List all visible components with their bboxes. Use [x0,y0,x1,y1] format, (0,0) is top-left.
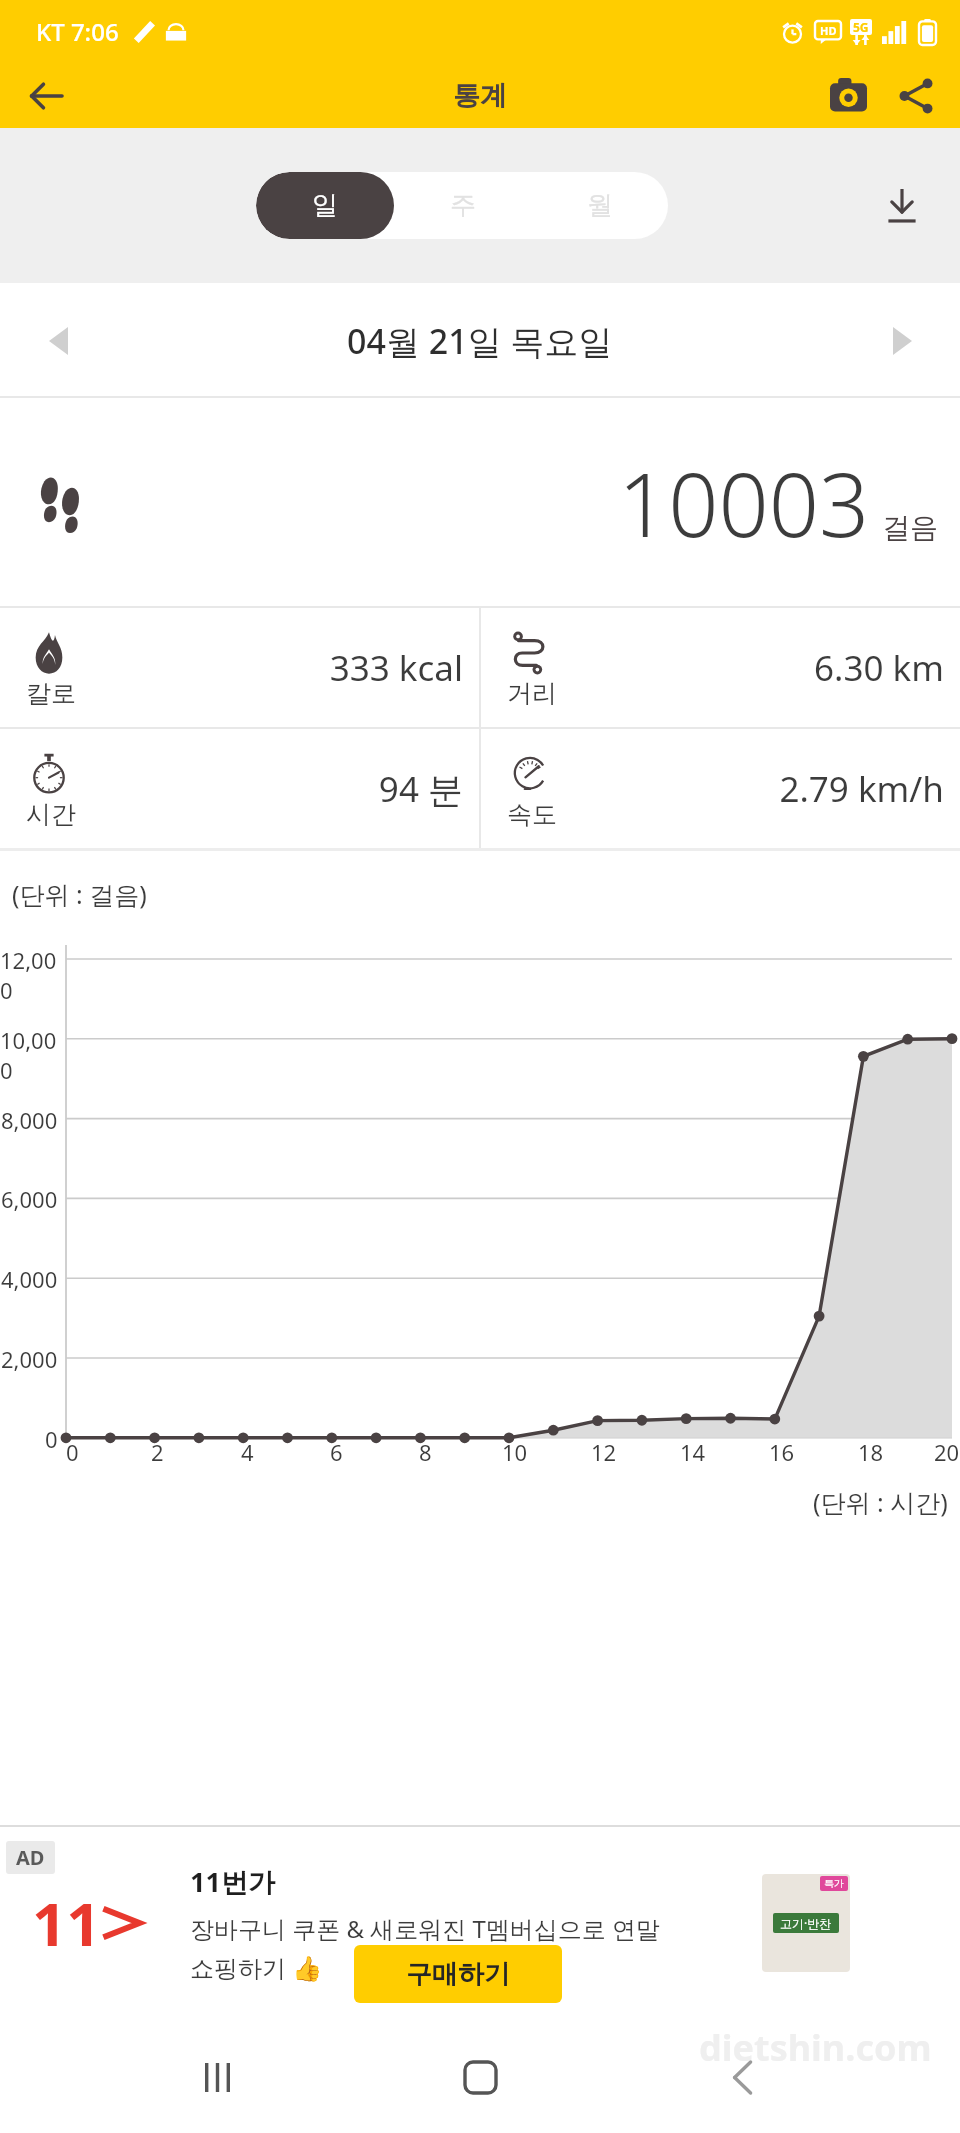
staticText: 11번가 [190,1863,275,1900]
button[interactable]: 거리 [481,608,960,727]
staticText: 0 [66,1437,79,1467]
staticText: 2.79 km/h [779,765,944,813]
staticText: 18 [858,1437,884,1467]
button[interactable]: 월 [531,172,668,239]
staticText: 쇼핑하기 👍 [190,1951,323,1984]
button[interactable]: 일 [256,172,394,239]
button[interactable]: Back [14,64,78,128]
staticText: 10 [502,1437,528,1467]
staticText: 걸음 [882,510,938,545]
staticText: 구매하기 [406,1958,510,1991]
staticText: 5G [853,19,869,35]
button[interactable]: AD [0,1825,960,2021]
staticText: 일 [312,189,338,222]
staticText: 6.30 km [814,644,944,692]
staticText: 16 [769,1437,795,1467]
staticText: 고기·반찬 [780,1915,832,1931]
staticText: 333 kcal [329,644,463,692]
staticText: 20 [934,1437,960,1467]
staticText: 8 [419,1437,432,1467]
staticText: HD [820,23,837,38]
staticText: KT 7:06 [36,15,119,48]
staticText: 11 [32,1882,101,1964]
button[interactable]: Recents [171,2031,263,2123]
staticText: 0 [45,1424,58,1454]
staticText: 칼로 [26,678,76,709]
staticText: 04월 21일 목요일 [347,318,613,364]
staticText: 월 [587,189,613,222]
staticText: 10,000 [0,1025,58,1085]
staticText: 94 분 [378,765,463,813]
staticText: 6 [330,1437,343,1467]
staticText: dietshin.com [699,2023,932,2072]
button[interactable]: Camera [814,63,882,128]
staticText: 특가 [824,1877,844,1890]
staticText: 장바구니 쿠폰 & 새로워진 T멤버십으로 연말 [190,1912,661,1945]
button[interactable]: 주 [394,172,531,239]
staticText: 10003 [618,443,870,563]
staticText: 12,000 [0,945,58,1005]
staticText: AD [16,1844,45,1871]
staticText: 4 [241,1437,254,1467]
staticText: 14 [680,1437,706,1467]
staticText: 통계 [453,79,507,113]
staticText: 시간 [26,799,76,830]
staticText: 2 [151,1437,164,1467]
staticText: (단위 : 걸음) [12,877,147,911]
staticText: 6,000 [1,1184,58,1214]
button[interactable]: Download [870,174,934,238]
staticText: 속도 [507,799,557,830]
staticText: 4,000 [1,1264,58,1294]
staticText: 거리 [507,678,557,709]
button[interactable]: 속도 [481,729,960,848]
staticText: 12 [591,1437,617,1467]
button[interactable]: Home [434,2031,526,2123]
button[interactable]: Back [697,2031,789,2123]
button[interactable]: Next day [870,309,934,373]
staticText: 8,000 [1,1105,58,1135]
staticText: 주 [450,189,476,222]
staticText: 2,000 [1,1344,58,1374]
button[interactable]: 칼로 [0,608,479,727]
button[interactable]: Previous day [26,309,90,373]
button[interactable]: 시간 [0,729,479,848]
button[interactable]: Share [882,63,950,128]
staticText: (단위 : 시간) [813,1485,948,1519]
button[interactable]: 구매하기 [354,1945,562,2003]
